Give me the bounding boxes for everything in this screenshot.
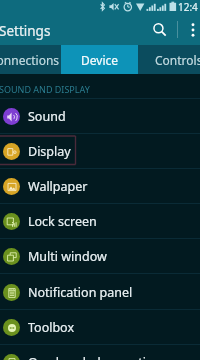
button[interactable]: Sound — [0, 99, 200, 134]
button[interactable]: Wallpaper — [0, 169, 200, 204]
staticText: SOUND AND DISPLAY — [0, 83, 90, 95]
staticText: Controls — [155, 52, 200, 68]
button[interactable]: Controls — [140, 45, 200, 74]
staticText: Notification panel — [28, 284, 133, 301]
button[interactable]: Device — [61, 45, 138, 74]
button[interactable]: Connections — [0, 45, 63, 74]
staticText: Sound — [28, 108, 66, 125]
staticText: One handed operation — [28, 354, 162, 360]
button[interactable]: Toolbox — [0, 310, 200, 345]
button[interactable]: Search — [146, 14, 172, 45]
staticText: Connections — [0, 52, 60, 68]
button[interactable]: Notification panel — [0, 275, 200, 310]
staticText: Display — [28, 143, 71, 160]
button[interactable]: Multi window — [0, 239, 200, 274]
staticText: Wallpaper — [28, 178, 88, 195]
button[interactable]: Display — [0, 134, 200, 169]
button[interactable]: Lock screen — [0, 204, 200, 239]
staticText: 12:4 — [178, 0, 198, 14]
button[interactable]: One handed operation — [0, 345, 200, 360]
staticText: Multi window — [28, 248, 107, 265]
staticText: Device — [81, 52, 119, 68]
staticText: Settings — [0, 22, 51, 40]
staticText: Lock screen — [28, 213, 97, 230]
button[interactable]: More options — [181, 14, 200, 45]
staticText: Toolbox — [28, 319, 75, 336]
